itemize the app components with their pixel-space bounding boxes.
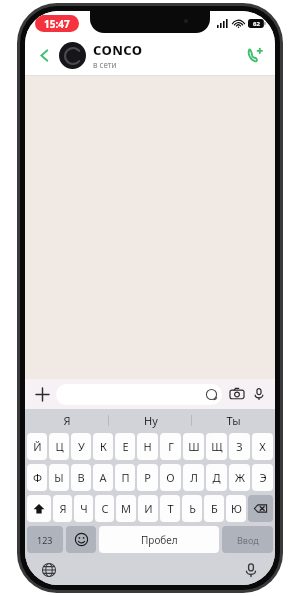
button[interactable]: Call [241, 41, 269, 69]
button[interactable]: М [116, 495, 136, 522]
button[interactable]: Shift [27, 495, 51, 522]
staticText: Ц [55, 439, 64, 454]
button[interactable]: Х [252, 433, 273, 460]
staticText: Е [122, 439, 129, 454]
staticText: Ы [54, 470, 64, 485]
button[interactable]: Dictation [241, 560, 261, 580]
button[interactable]: Р [137, 464, 158, 491]
staticText: Я [63, 413, 71, 428]
staticText: П [121, 470, 130, 485]
button[interactable]: З [229, 433, 250, 460]
button[interactable]: Н [137, 433, 158, 460]
button[interactable]: О [160, 464, 181, 491]
staticText: З [236, 439, 243, 454]
staticText: Ты [226, 413, 241, 428]
button[interactable]: Л [183, 464, 204, 491]
staticText: Ввод [237, 534, 259, 546]
button[interactable]: Ь [182, 495, 202, 522]
staticText: CONCO [93, 41, 143, 59]
staticText: Р [144, 470, 151, 485]
button[interactable] [56, 384, 222, 405]
button[interactable]: У [71, 433, 91, 460]
button[interactable]: 123 [27, 526, 63, 553]
button[interactable]: Ж [229, 464, 250, 491]
staticText: Ч [80, 501, 88, 516]
button[interactable]: Ну [109, 409, 192, 431]
staticText: С [101, 501, 109, 516]
button[interactable]: Ы [49, 464, 69, 491]
staticText: Т [167, 501, 174, 516]
staticText: Щ [211, 439, 223, 454]
button[interactable]: Ф [27, 464, 47, 491]
button[interactable]: П [115, 464, 135, 491]
staticText: Ь [189, 501, 196, 516]
staticText: Г [168, 439, 174, 454]
button[interactable]: Й [27, 433, 47, 460]
staticText: Ну [144, 413, 158, 428]
staticText: М [121, 501, 131, 516]
staticText: Ю [231, 501, 242, 516]
button[interactable]: В [71, 464, 91, 491]
button[interactable] [59, 42, 86, 69]
button[interactable]: Б [204, 495, 224, 522]
staticText: 15:47 [44, 17, 70, 31]
button[interactable]: Attach [31, 383, 53, 405]
staticText: Ш [188, 439, 200, 454]
button[interactable]: Д [206, 464, 227, 491]
staticText: А [99, 470, 107, 485]
staticText: Ф [33, 470, 42, 485]
button[interactable]: Я [25, 409, 109, 431]
button[interactable]: Ш [183, 433, 204, 460]
staticText: Б [211, 501, 218, 516]
button[interactable]: Э [252, 464, 273, 491]
staticText: К [100, 439, 107, 454]
staticText: И [144, 501, 153, 516]
staticText: Л [190, 470, 198, 485]
button[interactable]: А [93, 464, 113, 491]
button[interactable]: Т [160, 495, 180, 522]
button[interactable]: К [93, 433, 113, 460]
staticText: в сети [93, 59, 117, 70]
staticText: Н [143, 439, 152, 454]
staticText: Й [33, 439, 42, 454]
button[interactable]: Voice message [249, 384, 269, 404]
button[interactable]: Camera [227, 384, 247, 404]
button[interactable]: Emoji [66, 526, 96, 553]
staticText: Ж [235, 470, 245, 485]
staticText: У [78, 439, 85, 454]
staticText: 62 [253, 20, 260, 28]
button[interactable]: Щ [206, 433, 227, 460]
staticText: Д [212, 470, 221, 485]
staticText: Я [59, 501, 67, 516]
button[interactable]: Ю [226, 495, 246, 522]
button[interactable]: Я [53, 495, 72, 522]
button[interactable]: Пробел [99, 526, 219, 553]
button[interactable]: Back [31, 42, 57, 68]
button[interactable]: Backspace [248, 495, 273, 522]
button[interactable]: Е [115, 433, 135, 460]
button[interactable]: CONCO [93, 41, 241, 70]
button[interactable]: Г [160, 433, 181, 460]
button[interactable]: И [138, 495, 158, 522]
staticText: Пробел [141, 533, 178, 547]
button[interactable]: Ч [74, 495, 93, 522]
staticText: Х [259, 439, 266, 454]
staticText: В [77, 470, 85, 485]
staticText: Э [259, 470, 267, 485]
button[interactable]: Ты [192, 409, 275, 431]
button[interactable]: Ц [49, 433, 69, 460]
staticText: О [166, 470, 175, 485]
button[interactable]: С [95, 495, 114, 522]
staticText: 123 [37, 534, 53, 546]
button[interactable]: Ввод [222, 526, 273, 553]
button[interactable]: Change language [39, 560, 59, 580]
